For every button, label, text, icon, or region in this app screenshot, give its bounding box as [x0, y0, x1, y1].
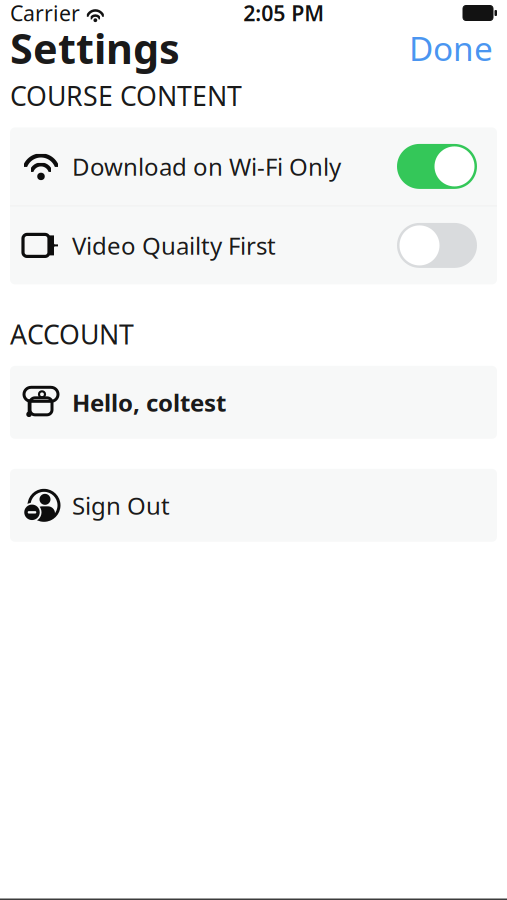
staticText: ACCOUNT [10, 316, 134, 352]
staticText: Settings [10, 21, 180, 75]
staticText: 2:05 PM [243, 0, 324, 27]
button[interactable]: Hello, coltest [10, 366, 497, 439]
button[interactable]: Done [405, 20, 497, 76]
staticText: Carrier [10, 0, 80, 27]
button[interactable]: Video Quailty First [10, 206, 497, 284]
staticText: Download on Wi-Fi Only [72, 150, 341, 182]
staticText: Video Quailty First [72, 229, 276, 261]
button[interactable]: Download on Wi-Fi Only [10, 127, 497, 205]
staticText: Hello, coltest [72, 386, 226, 418]
button[interactable]: Sign Out [10, 469, 497, 542]
staticText: Done [409, 26, 493, 70]
staticText: COURSE CONTENT [10, 78, 242, 113]
staticText: Sign Out [72, 489, 170, 521]
